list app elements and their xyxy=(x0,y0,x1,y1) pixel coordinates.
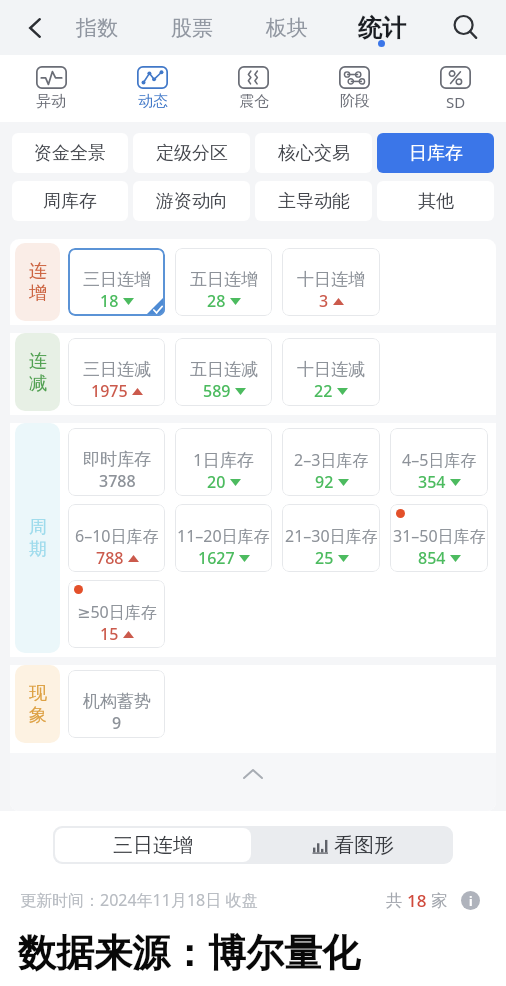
button[interactable]: 三日连减 xyxy=(68,338,165,406)
button[interactable]: 定级分区 xyxy=(133,133,250,173)
button[interactable]: 看图形 xyxy=(253,826,453,864)
button[interactable]: Search xyxy=(426,0,506,55)
staticText: 4–5日库存 xyxy=(402,449,477,471)
staticText: 连增 xyxy=(28,260,48,305)
button[interactable]: 动态 xyxy=(102,55,203,122)
button[interactable]: 股票 xyxy=(144,0,239,55)
staticText: 阶段 xyxy=(340,92,370,111)
staticText: 三日连增 xyxy=(83,269,151,290)
staticText: 更新时间：2024年11月18日 收盘 xyxy=(20,889,258,911)
button[interactable]: 五日连增 xyxy=(175,248,272,316)
button[interactable]: Back xyxy=(0,0,70,55)
button[interactable]: 核心交易 xyxy=(255,133,372,173)
button[interactable]: 异动 xyxy=(0,55,102,122)
staticText: 3788 xyxy=(99,470,136,492)
staticText: 现象 xyxy=(28,682,48,727)
button[interactable]: 即时库存 xyxy=(68,428,165,496)
staticText: 其他 xyxy=(418,190,454,213)
staticText: 1975 xyxy=(91,380,128,402)
button[interactable]: 指数 xyxy=(50,0,144,55)
button[interactable]: 统计 xyxy=(334,0,429,55)
staticText: 资金全景 xyxy=(34,142,106,165)
button[interactable]: 31–50日库存 xyxy=(390,504,488,572)
staticText: ≥50日库存 xyxy=(77,601,157,623)
button[interactable]: 1日库存 xyxy=(175,428,272,496)
staticText: 五日连减 xyxy=(190,359,258,380)
staticText: 22 xyxy=(314,380,333,402)
staticText: 788 xyxy=(96,547,124,569)
button[interactable]: 4–5日库存 xyxy=(390,428,488,496)
staticText: 11–20日库存 xyxy=(177,525,270,547)
staticText: 五日连增 xyxy=(190,269,258,290)
staticText: 589 xyxy=(203,380,231,402)
staticText: 354 xyxy=(418,471,446,493)
button[interactable]: 三日连增 xyxy=(55,828,251,862)
staticText: 2–3日库存 xyxy=(294,449,369,471)
button[interactable]: 21–30日库存 xyxy=(282,504,380,572)
staticText: 周库存 xyxy=(43,190,97,213)
button[interactable]: Info xyxy=(461,891,480,910)
staticText: 十日连减 xyxy=(297,359,365,380)
staticText: 三日连减 xyxy=(83,359,151,380)
button[interactable]: 资金全景 xyxy=(12,133,128,173)
button[interactable]: 十日连增 xyxy=(282,248,380,316)
button[interactable]: 日库存 xyxy=(377,133,494,173)
button[interactable]: ≥50日库存 xyxy=(68,580,165,648)
staticText: 31–50日库存 xyxy=(393,525,486,547)
staticText: 9 xyxy=(112,712,122,734)
button[interactable]: 震仓 xyxy=(203,55,304,122)
staticText: 十日连增 xyxy=(297,269,365,290)
button[interactable]: 阶段 xyxy=(304,55,405,122)
staticText: 板块 xyxy=(266,15,308,41)
staticText: 20 xyxy=(207,471,226,493)
staticText: 机构蓄势 xyxy=(83,691,151,712)
button[interactable]: 11–20日库存 xyxy=(175,504,272,572)
button[interactable]: SD xyxy=(405,55,506,122)
staticText: 日库存 xyxy=(409,142,463,165)
staticText: 周期 xyxy=(28,516,48,561)
staticText: i xyxy=(469,893,473,909)
staticText: 异动 xyxy=(36,92,66,111)
staticText: 854 xyxy=(418,547,446,569)
staticText: 28 xyxy=(207,290,226,312)
staticText: 1627 xyxy=(198,547,235,569)
staticText: 三日连增 xyxy=(113,833,193,858)
button[interactable]: 主导动能 xyxy=(255,181,372,221)
button[interactable]: Collapse xyxy=(10,753,496,811)
staticText: 92 xyxy=(315,471,334,493)
staticText: 动态 xyxy=(138,92,168,111)
staticText: 连减 xyxy=(28,350,48,395)
staticText: 18 xyxy=(407,889,427,911)
staticText: 1日库存 xyxy=(193,448,254,471)
staticText: 股票 xyxy=(171,15,213,41)
staticText: 25 xyxy=(315,547,334,569)
button[interactable]: 三日连增 xyxy=(68,248,165,316)
button[interactable]: 其他 xyxy=(377,181,494,221)
staticText: 家 xyxy=(427,889,448,911)
button[interactable]: 十日连减 xyxy=(282,338,380,406)
staticText: 18 xyxy=(100,290,119,312)
staticText: 共 xyxy=(386,889,407,911)
staticText: 6–10日库存 xyxy=(75,525,159,547)
staticText: 看图形 xyxy=(334,833,394,858)
button[interactable]: 2–3日库存 xyxy=(282,428,380,496)
button[interactable]: 五日连减 xyxy=(175,338,272,406)
button[interactable]: 游资动向 xyxy=(133,181,250,221)
staticText: SD xyxy=(446,92,466,112)
button[interactable]: 板块 xyxy=(239,0,334,55)
staticText: 即时库存 xyxy=(83,449,151,470)
button[interactable]: 6–10日库存 xyxy=(68,504,165,572)
staticText: 21–30日库存 xyxy=(285,525,378,547)
staticText: 数据来源：博尔量化 xyxy=(18,929,360,977)
staticText: 定级分区 xyxy=(156,142,228,165)
staticText: 指数 xyxy=(76,15,118,41)
staticText: 3 xyxy=(319,290,329,312)
button[interactable]: 机构蓄势 xyxy=(68,670,165,738)
staticText: 震仓 xyxy=(239,92,269,111)
staticText: 游资动向 xyxy=(156,190,228,213)
staticText: 核心交易 xyxy=(278,142,350,165)
staticText: 主导动能 xyxy=(278,190,350,213)
staticText: 15 xyxy=(100,623,119,645)
staticText: 统计 xyxy=(358,13,406,43)
button[interactable]: 周库存 xyxy=(12,181,128,221)
